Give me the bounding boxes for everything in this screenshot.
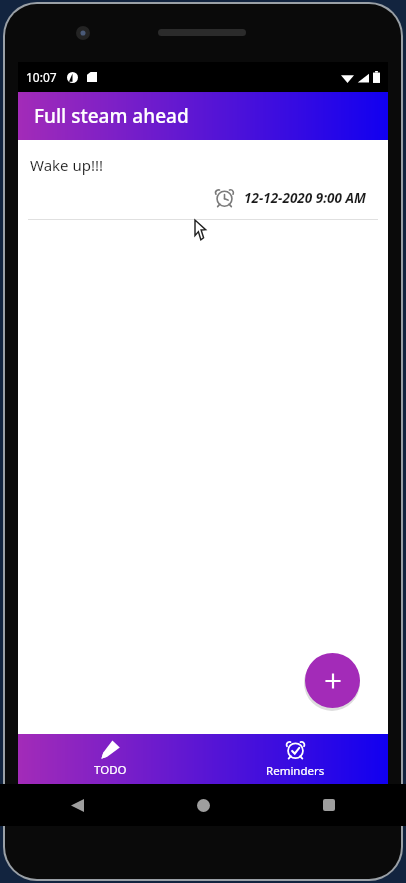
- staticText: Full steam ahead: [34, 103, 189, 129]
- button[interactable]: Home: [186, 788, 220, 822]
- button[interactable]: Back: [60, 788, 94, 822]
- button[interactable]: Add reminder: [305, 653, 360, 708]
- staticText: TODO: [94, 762, 127, 778]
- button[interactable]: Wake up!!!: [18, 140, 388, 220]
- button[interactable]: TODO: [18, 734, 203, 784]
- staticText: Wake up!!!: [30, 155, 104, 175]
- staticText: 12-12-2020 9:00 AM: [244, 189, 366, 207]
- staticText: 10:07: [26, 69, 57, 85]
- staticText: Reminders: [266, 763, 325, 779]
- button[interactable]: Reminders: [203, 734, 388, 784]
- button[interactable]: Recent apps: [312, 788, 346, 822]
